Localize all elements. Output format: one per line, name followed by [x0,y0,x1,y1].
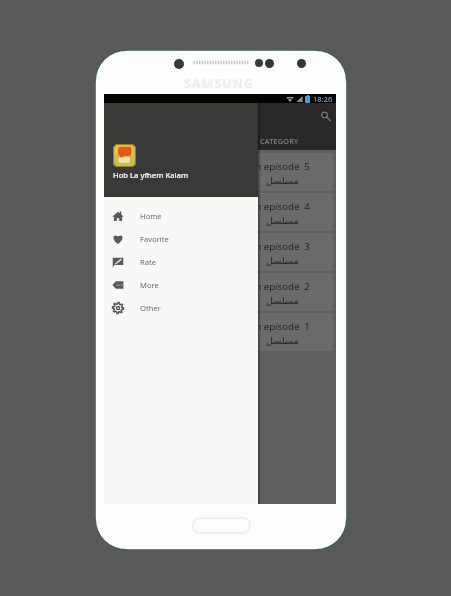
staticText: an episode 4 [250,200,310,213]
staticText: CATEGORY [260,136,299,146]
staticText: SAMSUNG [184,75,254,92]
staticText: 18:26 [313,94,333,103]
staticText: More [140,280,159,290]
button[interactable]: Other [104,296,258,319]
button[interactable]: an episode 4 [104,193,333,231]
staticText: an episode 2 [250,280,310,293]
button[interactable]: Search [314,105,336,127]
staticText: an episode 5 [250,160,310,173]
staticText: an episode 3 [250,240,310,253]
staticText: Hob La yfhem Kalam [113,170,189,180]
button[interactable]: an episode 5 [104,153,333,191]
staticText: Home [140,211,162,221]
staticText: مسلسل [266,175,299,186]
button[interactable]: CATEGORY [104,133,336,150]
staticText: مسلسل [266,255,299,266]
button[interactable]: an episode 2 [104,273,333,311]
staticText: Rate [140,257,157,267]
staticText: an episode 1 [250,320,310,333]
staticText: Other [140,303,161,313]
button[interactable]: Home [104,204,258,227]
button[interactable]: an episode 3 [104,233,333,271]
button[interactable]: Favorite [104,227,258,250]
staticText: مسلسل [266,215,299,226]
button[interactable]: Rate [104,250,258,273]
staticText: Favorite [140,234,169,244]
button[interactable]: an episode 1 [104,313,333,351]
staticText: مسلسل [266,335,299,346]
staticText: مسلسل [266,295,299,306]
button[interactable]: More [104,273,258,296]
